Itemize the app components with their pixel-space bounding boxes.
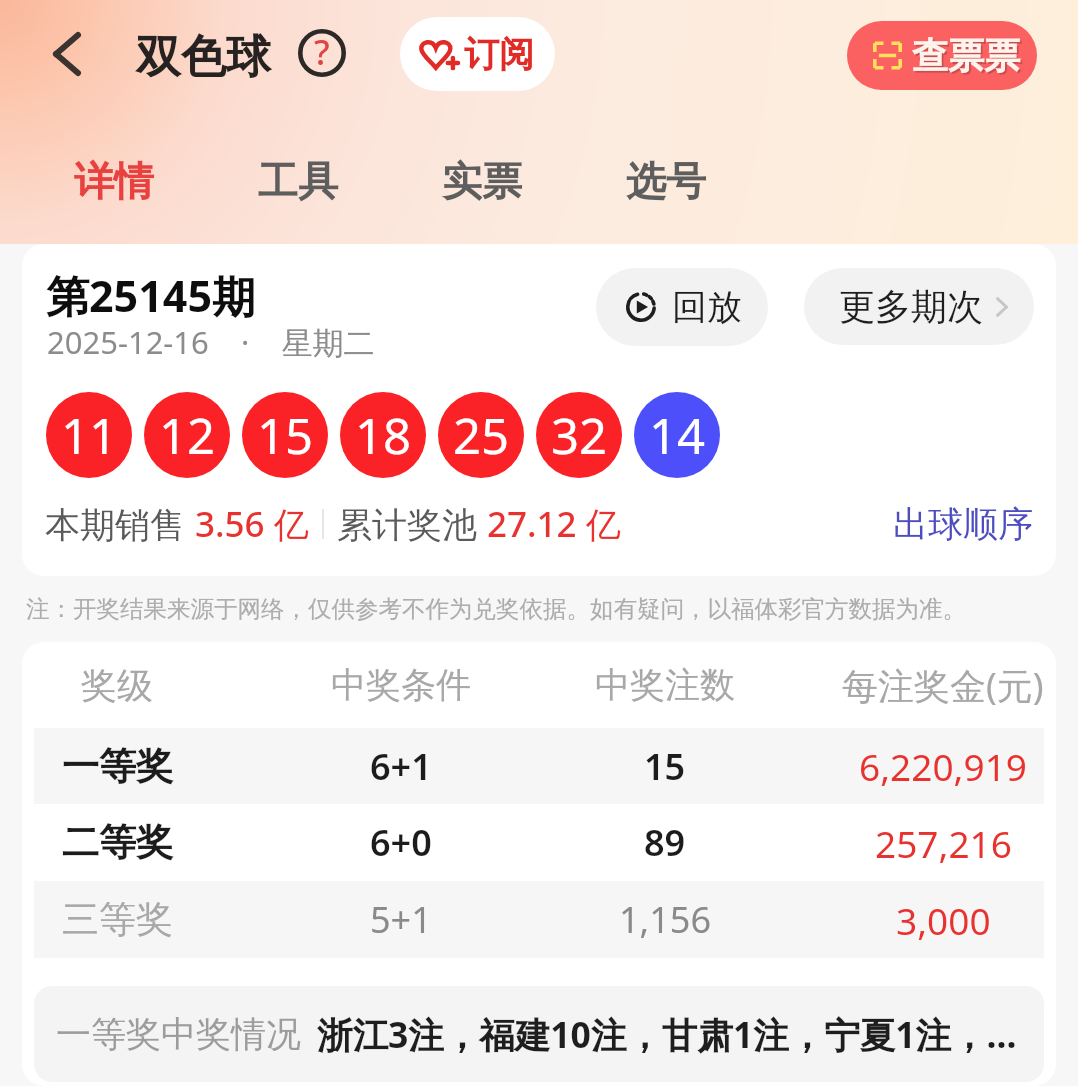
staticText: 第25145期 [46,266,255,325]
staticText: 实票 [442,156,522,206]
staticText: 12 [159,402,216,469]
staticText: 查票票 [914,35,1022,80]
staticText: 27.12 亿 [487,500,621,548]
button[interactable]: Help [296,27,348,79]
staticText: 15 [257,402,314,469]
staticText: ? [314,28,330,76]
staticText: 一等奖 [62,743,173,790]
staticText: 14 [649,402,706,469]
staticText: 3.56 亿 [195,500,309,548]
button[interactable]: 一等奖中奖情况 [34,986,1044,1082]
button[interactable]: 更多期次 [804,268,1034,345]
staticText: 6+1 [370,742,432,791]
button[interactable]: 详情 [52,145,176,217]
staticText: 2025-12-16 · 星期二 [47,321,375,363]
staticText: 回放 [672,285,742,329]
staticText: 奖级 [81,663,153,708]
staticText: 18 [355,402,412,469]
staticText: 25 [453,402,510,469]
staticText: 6+0 [370,818,432,867]
staticText: 二等奖 [62,819,173,866]
staticText: 查票票 [912,33,1020,78]
staticText: 浙江3注，福建10注，甘肃1注，宁夏1注，... [317,1010,1017,1058]
button[interactable]: 工具 [236,145,360,217]
staticText: 注：开奖结果来源于网络，仅供参考不作为兑奖依据。如有疑问，以福体彩官方数据为准。 [26,594,966,624]
staticText: 89 [644,818,686,867]
button[interactable]: 查票票 [847,21,1037,90]
staticText: 双色球 [136,29,271,86]
staticText: 更多期次 [839,284,983,329]
button[interactable]: 实票 [420,145,544,217]
staticText: 5+1 [370,895,432,944]
staticText: 一等奖中奖情况 [56,1012,301,1056]
button[interactable]: 订阅 [400,17,555,91]
staticText: 257,216 [875,818,1012,868]
staticText: 中奖注数 [595,663,735,707]
staticText: 累计奖池 [337,500,487,548]
staticText: 三等奖 [62,896,173,943]
staticText: 32 [551,402,608,469]
button[interactable]: 出球顺序 [893,502,1033,546]
button[interactable]: 回放 [596,268,768,346]
staticText: 本期销售 [45,500,195,548]
staticText: 3,000 [896,895,991,945]
staticText: 中奖条件 [331,663,471,707]
staticText: 工具 [258,156,338,206]
staticText: 订阅 [464,32,534,76]
staticText: 每注奖金(元) [842,661,1044,710]
staticText: 6,220,919 [859,741,1027,791]
staticText: 选号 [626,156,706,206]
staticText: 15 [644,742,686,791]
button[interactable]: Back [39,26,95,82]
staticText: 1,156 [619,895,712,944]
staticText: 出球顺序 [893,502,1033,546]
button[interactable]: 选号 [604,145,728,217]
staticText: 11 [61,402,118,469]
staticText: 详情 [74,156,154,206]
